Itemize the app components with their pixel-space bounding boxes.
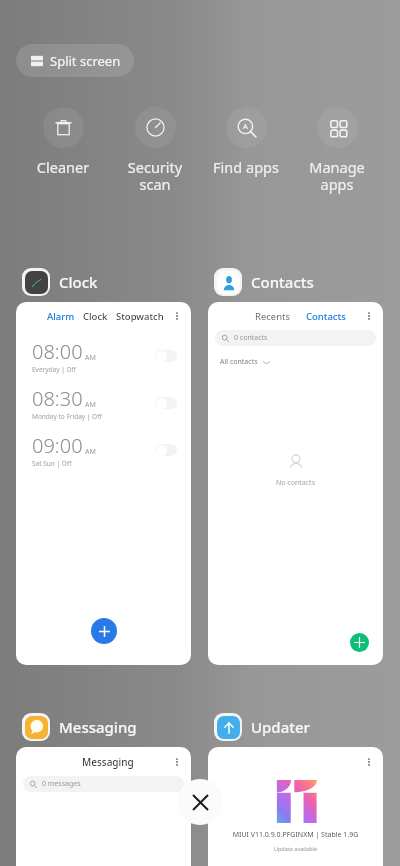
button[interactable]: More options [363,310,375,322]
button[interactable]: More options [171,756,183,768]
staticText: Update available [208,845,383,852]
button[interactable]: More options [363,756,375,768]
button[interactable]: Clock [16,267,98,297]
staticText: Clock [59,272,98,292]
button[interactable]: Toggle alarm [155,350,177,362]
button[interactable]: Add alarm [91,618,117,644]
button[interactable]: Toggle alarm [155,444,177,456]
button[interactable]: Manage apps [291,107,383,194]
button[interactable]: 0 messages [23,776,184,792]
staticText: Contacts [251,272,314,292]
staticText: Clock [83,310,108,323]
staticText: Sat Sun | Off [32,459,72,468]
staticText: 08:00 [32,338,83,365]
button[interactable]: 08:00 [32,332,177,379]
button[interactable]: Close all apps [177,779,223,825]
button[interactable]: Add contact [350,633,369,652]
button[interactable]: Toggle alarm [155,397,177,409]
button[interactable]: Security scan [109,107,201,194]
staticText: 09:00 [32,432,83,459]
staticText: All contacts [220,357,258,367]
staticText: No contacts [276,478,315,488]
staticText: Cleaner [17,157,109,177]
staticText: 08:30 [32,385,83,412]
button[interactable]: 08:30 [32,379,177,426]
button[interactable]: Updater [208,712,310,742]
staticText: Updater [251,717,310,737]
staticText: Everyday | Off [32,365,77,374]
staticText: Contacts [306,310,346,323]
staticText: Monday to Friday | Off [32,412,102,421]
staticText: Find apps [200,157,292,177]
staticText: AM [85,447,96,457]
button[interactable]: More options [208,747,383,866]
button[interactable]: Recents [208,302,383,665]
staticText: Alarm [47,310,75,323]
staticText: A [243,121,248,131]
button[interactable]: 09:00 [32,426,177,473]
staticText: 0 contacts [234,333,268,343]
button[interactable]: Contacts [208,267,314,297]
button[interactable]: Split screen [16,44,134,77]
staticText: Security scan [109,157,201,194]
staticText: Messaging [59,717,137,737]
staticText: Manage apps [291,157,383,194]
staticText: 0 messages [42,779,81,789]
button[interactable]: 0 contacts [215,330,376,346]
staticText: Split screen [50,52,121,70]
button[interactable]: More options [171,310,183,322]
staticText: Messaging [82,755,134,769]
button[interactable]: A [200,107,292,177]
staticText: Recents [255,310,291,323]
button[interactable]: Messaging [16,747,191,866]
button[interactable]: Alarm [16,302,191,665]
button[interactable]: Cleaner [17,107,109,177]
button[interactable]: Messaging [16,712,137,742]
staticText: MIUI V11.0.9.0.PFGINXM | Stable 1.9G [208,830,383,840]
staticText: Stopwatch [116,310,164,323]
staticText: AM [85,400,96,410]
staticText: AM [85,353,96,363]
